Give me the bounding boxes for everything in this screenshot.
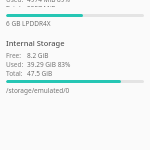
staticText: 5557 MiB	[27, 4, 56, 7]
staticText: 4974 MiB 89%	[27, 0, 70, 4]
staticText: 8.2 GiB	[27, 51, 49, 60]
staticText: Total:	[6, 4, 23, 7]
staticText: /storage/emulated/0	[6, 86, 70, 95]
staticText: 6 GB LPDDR4X	[6, 19, 51, 28]
staticText: Internal Storage	[6, 38, 65, 48]
staticText: 47.5 GiB	[27, 69, 53, 78]
staticText: Used:	[6, 0, 24, 4]
button[interactable]: Free:	[6, 51, 144, 78]
staticText: Used:	[6, 60, 24, 69]
staticText: Free:	[6, 51, 22, 60]
button[interactable]: Used:	[6, 0, 144, 12]
staticText: 39.29 GiB 83%	[27, 60, 71, 69]
staticText: Total:	[6, 69, 23, 78]
